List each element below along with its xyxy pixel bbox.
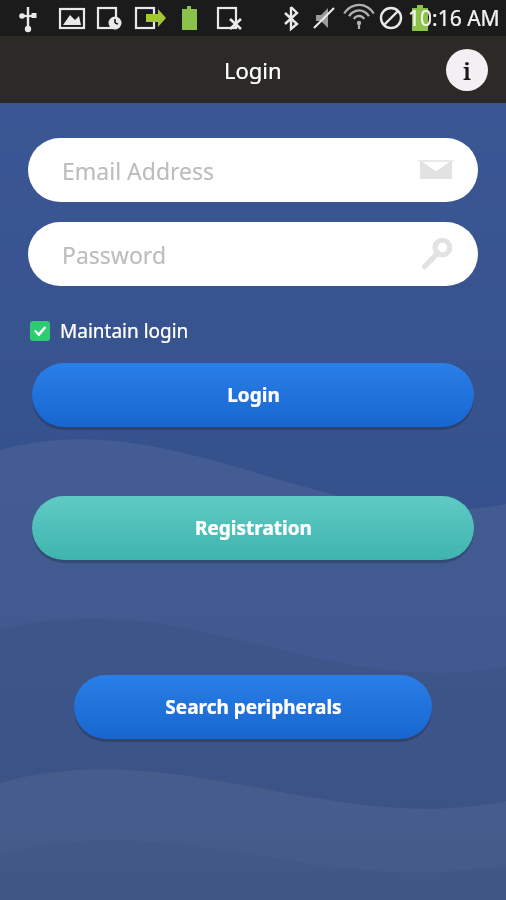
button[interactable]: Email Address: [28, 138, 478, 202]
button[interactable]: Maintain login: [28, 316, 191, 346]
button[interactable]: Password: [28, 222, 478, 286]
staticText: Registration: [195, 515, 312, 541]
staticText: Email Address: [62, 155, 215, 186]
button[interactable]: Registration: [32, 496, 474, 560]
staticText: Maintain login: [60, 318, 189, 344]
staticText: Login: [227, 382, 280, 408]
button[interactable]: Search peripherals: [74, 675, 432, 739]
button[interactable]: Login: [32, 363, 474, 427]
staticText: Login: [224, 55, 282, 85]
button[interactable]: Info: [446, 49, 488, 91]
staticText: Search peripherals: [165, 694, 342, 720]
staticText: 10:16 AM: [408, 4, 500, 33]
staticText: i: [463, 55, 472, 86]
staticText: Password: [62, 239, 167, 270]
